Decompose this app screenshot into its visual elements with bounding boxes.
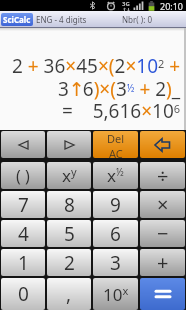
button[interactable]: ( ): [1, 162, 45, 189]
staticText: 1: [18, 250, 29, 276]
button[interactable]: 10x: [93, 278, 138, 310]
button[interactable]: 7: [1, 191, 45, 218]
staticText: = 5,616×106: [62, 98, 181, 124]
staticText: 2 + 36×45×(2×102 +: [12, 53, 181, 79]
staticText: Nbr( ): 0: [122, 14, 152, 25]
staticText: SciCalc: [3, 14, 31, 25]
staticText: ×: [157, 191, 169, 218]
button[interactable]: 6: [93, 220, 138, 247]
button[interactable]: 3: [93, 249, 138, 276]
button[interactable]: ÷: [140, 162, 185, 189]
button[interactable]: +: [140, 249, 185, 276]
staticText: 8: [64, 192, 75, 218]
button[interactable]: 5: [47, 220, 91, 247]
staticText: ,: [66, 281, 72, 307]
button[interactable]: −: [140, 220, 185, 247]
staticText: xy: [62, 164, 77, 187]
button[interactable]: Del: [93, 131, 138, 158]
button[interactable]: 4: [1, 220, 45, 247]
staticText: ENG - 4 digits: [36, 14, 87, 25]
staticText: 3↑6)×(3½ + 2)_: [58, 76, 181, 102]
staticText: 0: [18, 281, 29, 307]
staticText: ( ): [16, 165, 30, 187]
staticText: 5: [64, 221, 75, 247]
staticText: 6: [110, 221, 121, 247]
button[interactable]: [140, 278, 185, 310]
staticText: ÷: [157, 162, 169, 189]
button[interactable]: SciCalc: [1, 13, 33, 26]
button[interactable]: 9: [93, 191, 138, 218]
button[interactable]: ,: [47, 278, 91, 310]
button[interactable]: 0: [1, 278, 45, 310]
staticText: 3: [110, 250, 121, 276]
button[interactable]: xy: [47, 162, 91, 189]
staticText: 4: [18, 221, 29, 247]
staticText: AC: [109, 146, 123, 158]
staticText: Del: [107, 131, 125, 146]
staticText: 10x: [103, 283, 129, 306]
staticText: +: [157, 249, 169, 276]
button[interactable]: x½: [93, 162, 138, 189]
staticText: 3G: [122, 0, 130, 8]
button[interactable]: [1, 131, 45, 158]
staticText: 2: [64, 250, 75, 276]
staticText: x½: [107, 164, 124, 187]
button[interactable]: 1: [1, 249, 45, 276]
staticText: 9: [110, 192, 121, 218]
button[interactable]: [47, 131, 91, 158]
staticText: −: [157, 220, 169, 247]
button[interactable]: [140, 131, 185, 158]
staticText: 20:10: [160, 0, 184, 11]
button[interactable]: 2: [47, 249, 91, 276]
staticText: 7: [18, 192, 29, 218]
button[interactable]: 8: [47, 191, 91, 218]
button[interactable]: ×: [140, 191, 185, 218]
